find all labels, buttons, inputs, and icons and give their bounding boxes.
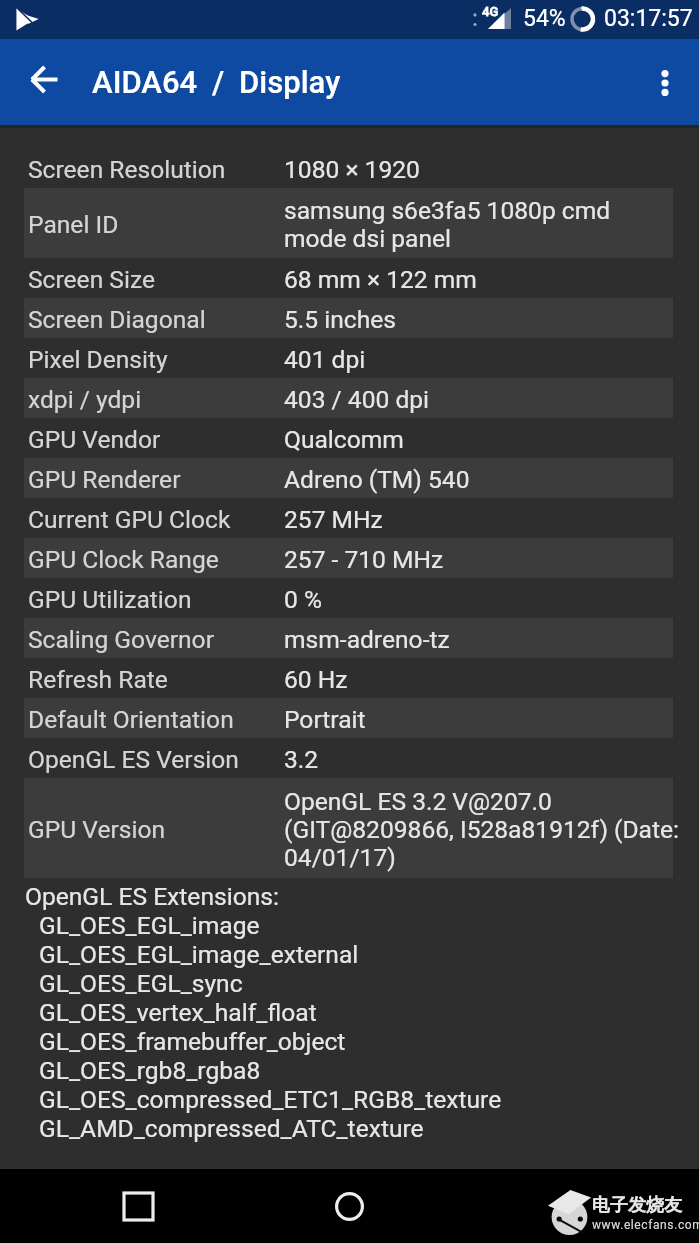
staticText: GL_OES_EGL_image <box>39 911 260 940</box>
button[interactable]: Panel ID <box>24 188 673 258</box>
staticText: www.elecfans.com <box>592 1218 699 1232</box>
button[interactable]: GPU Version <box>24 778 673 878</box>
button[interactable]: Back <box>15 50 73 108</box>
button[interactable]: GPU Clock Range <box>24 538 673 578</box>
button[interactable]: Screen Diagonal <box>24 298 673 338</box>
staticText: AIDA64 <box>92 64 198 100</box>
staticText: Screen Size <box>28 265 155 294</box>
staticText: GL_OES_framebuffer_object <box>39 1027 346 1056</box>
staticText: GL_OES_EGL_sync <box>39 969 243 998</box>
staticText: 403 / 400 dpi <box>284 385 430 414</box>
staticText: 03:17:57 <box>604 5 693 32</box>
staticText: GPU Clock Range <box>28 545 219 574</box>
button[interactable]: Scaling Governor <box>24 618 673 658</box>
staticText: msm-adreno-tz <box>284 625 450 654</box>
staticText: OpenGL ES Version <box>28 745 239 774</box>
staticText: GPU Version <box>28 815 166 844</box>
staticText: 电子发烧友 <box>592 1194 682 1217</box>
button[interactable]: Refresh Rate <box>24 658 673 698</box>
staticText: GL_OES_EGL_image_external <box>39 940 359 969</box>
staticText: Default Orientation <box>28 705 234 734</box>
staticText: GPU Renderer <box>28 465 181 494</box>
button[interactable]: Pixel Density <box>24 338 673 378</box>
staticText: 68 mm × 122 mm <box>284 265 477 294</box>
button[interactable]: Screen Size <box>24 258 673 298</box>
button[interactable]: Recent apps <box>110 1178 166 1234</box>
staticText: OpenGL ES Extensions: <box>25 882 279 911</box>
staticText: Refresh Rate <box>28 665 168 694</box>
staticText: 4G <box>482 4 499 19</box>
staticText: Scaling Governor <box>28 625 214 654</box>
button[interactable]: Screen Resolution <box>24 148 673 188</box>
staticText: 3.2 <box>284 745 319 774</box>
staticText: samsung s6e3fa5 1080p cmd mode dsi panel <box>284 196 611 253</box>
staticText: GPU Vendor <box>28 425 161 454</box>
staticText: Pixel Density <box>28 345 168 374</box>
staticText: Qualcomm <box>284 425 404 454</box>
staticText: OpenGL ES 3.2 V@207.0 (GIT@8209866, I528… <box>284 787 680 872</box>
staticText: 1080 × 1920 <box>284 155 420 184</box>
button[interactable]: GPU Utilization <box>24 578 673 618</box>
staticText: Panel ID <box>28 210 119 239</box>
staticText: GL_OES_vertex_half_float <box>39 998 317 1027</box>
button[interactable]: Home <box>321 1178 377 1234</box>
staticText: xdpi / ydpi <box>28 385 142 414</box>
button[interactable]: More options <box>636 54 694 112</box>
staticText: 54% <box>523 5 566 32</box>
staticText: Screen Diagonal <box>28 305 206 334</box>
staticText: 257 - 710 MHz <box>284 545 444 574</box>
staticText: GL_AMD_compressed_ATC_texture <box>39 1114 424 1143</box>
button[interactable]: OpenGL ES Version <box>24 738 673 778</box>
staticText: Display <box>239 64 341 100</box>
staticText: 5.5 inches <box>284 305 396 334</box>
staticText: GL_OES_rgb8_rgba8 <box>39 1056 261 1085</box>
staticText: 60 Hz <box>284 665 348 694</box>
staticText: Current GPU Clock <box>28 505 231 534</box>
staticText: Screen Resolution <box>28 155 226 184</box>
staticText: 401 dpi <box>284 345 366 374</box>
button[interactable]: GPU Vendor <box>24 418 673 458</box>
staticText: Portrait <box>284 705 366 734</box>
button[interactable]: Default Orientation <box>24 698 673 738</box>
button[interactable]: GPU Renderer <box>24 458 673 498</box>
staticText: / <box>212 64 225 100</box>
staticText: 0 % <box>284 585 322 614</box>
staticText: GPU Utilization <box>28 585 192 614</box>
staticText: 257 MHz <box>284 505 383 534</box>
staticText: GL_OES_compressed_ETC1_RGB8_texture <box>39 1085 502 1114</box>
staticText: Adreno (TM) 540 <box>284 465 470 494</box>
button[interactable]: Current GPU Clock <box>24 498 673 538</box>
button[interactable]: xdpi / ydpi <box>24 378 673 418</box>
